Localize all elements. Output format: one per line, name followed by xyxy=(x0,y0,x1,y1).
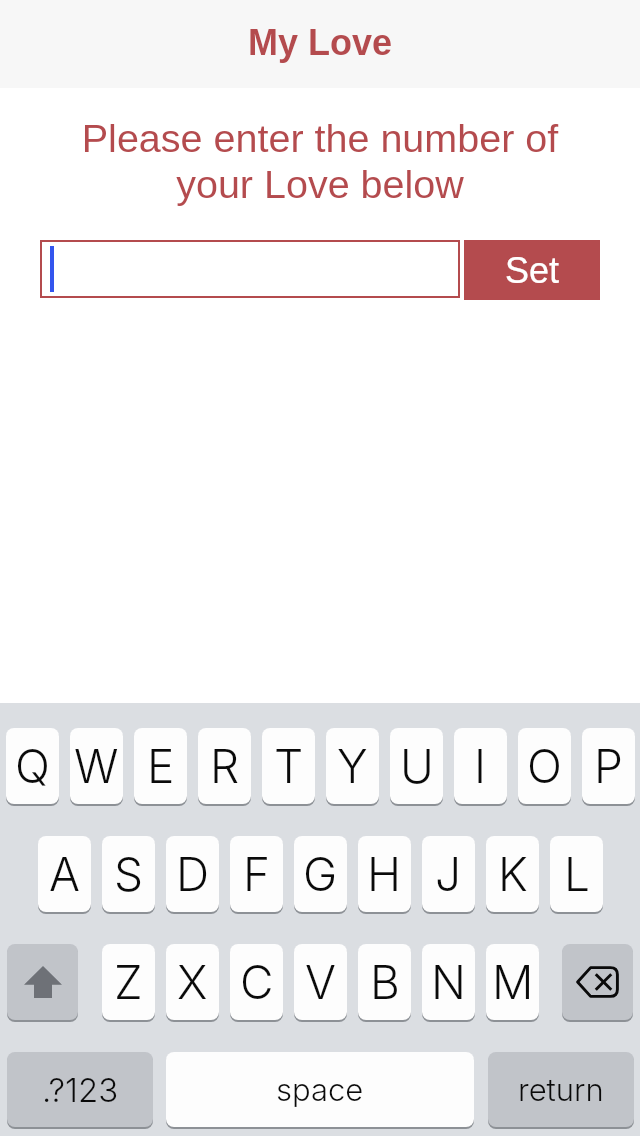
button[interactable]: D xyxy=(166,836,219,912)
staticText: .?123 xyxy=(42,1070,119,1110)
button[interactable]: H xyxy=(358,836,411,912)
button[interactable]: Shift xyxy=(7,944,78,1020)
staticText: E xyxy=(147,738,175,794)
button[interactable]: X xyxy=(166,944,219,1020)
staticText: K xyxy=(498,846,528,902)
button[interactable]: I xyxy=(454,728,507,804)
staticText: F xyxy=(243,846,271,902)
button[interactable]: B xyxy=(358,944,411,1020)
staticText: S xyxy=(114,846,144,902)
button[interactable]: F xyxy=(230,836,283,912)
staticText: L xyxy=(564,846,590,902)
staticText: B xyxy=(370,954,400,1010)
button[interactable]: S xyxy=(102,836,155,912)
staticText: Y xyxy=(337,738,368,794)
staticText: My Love xyxy=(248,22,393,62)
button[interactable]: Delete xyxy=(562,944,633,1020)
staticText: W xyxy=(74,738,119,794)
staticText: C xyxy=(240,954,274,1010)
staticText: I xyxy=(474,738,487,794)
button[interactable]: C xyxy=(230,944,283,1020)
staticText: V xyxy=(305,954,336,1010)
button[interactable]: Y xyxy=(326,728,379,804)
button[interactable]: Set xyxy=(464,240,600,300)
staticText: P xyxy=(594,738,623,794)
button[interactable]: R xyxy=(198,728,251,804)
staticText: O xyxy=(527,738,562,794)
staticText: T xyxy=(274,738,304,794)
button[interactable]: V xyxy=(294,944,347,1020)
staticText: Set xyxy=(505,250,560,290)
staticText: H xyxy=(367,846,402,902)
button[interactable]: return xyxy=(488,1052,634,1127)
staticText: J xyxy=(435,846,462,902)
staticText: A xyxy=(49,846,80,902)
staticText: Z xyxy=(114,954,143,1010)
staticText: space xyxy=(276,1071,364,1109)
button[interactable]: G xyxy=(294,836,347,912)
button[interactable]: P xyxy=(582,728,635,804)
staticText: U xyxy=(400,738,434,794)
button[interactable]: M xyxy=(486,944,539,1020)
button[interactable] xyxy=(40,240,460,298)
staticText: N xyxy=(431,954,466,1010)
staticText: R xyxy=(210,738,240,794)
button[interactable]: W xyxy=(70,728,123,804)
button[interactable]: Q xyxy=(6,728,59,804)
staticText: Please enter the number of your Love bel… xyxy=(0,116,640,206)
staticText: return xyxy=(518,1071,604,1109)
button[interactable]: K xyxy=(486,836,539,912)
button[interactable]: space xyxy=(166,1052,474,1127)
button[interactable]: Z xyxy=(102,944,155,1020)
staticText: X xyxy=(177,954,208,1010)
staticText: G xyxy=(303,846,338,902)
button[interactable]: T xyxy=(262,728,315,804)
button[interactable]: O xyxy=(518,728,571,804)
staticText: D xyxy=(176,846,210,902)
button[interactable]: My Love xyxy=(0,0,640,88)
button[interactable]: A xyxy=(38,836,91,912)
button[interactable]: L xyxy=(550,836,603,912)
button[interactable]: N xyxy=(422,944,475,1020)
staticText: Q xyxy=(15,738,50,794)
staticText: M xyxy=(492,954,534,1010)
button[interactable]: .?123 xyxy=(7,1052,153,1127)
button[interactable]: J xyxy=(422,836,475,912)
button[interactable]: E xyxy=(134,728,187,804)
button[interactable]: U xyxy=(390,728,443,804)
